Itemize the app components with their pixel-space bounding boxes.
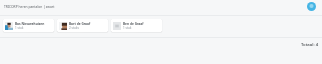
staticText: Bart de Graaf: [69, 22, 91, 26]
staticText: Ben de Graaf: [123, 22, 144, 26]
button[interactable]: Ben de Graaf: [111, 19, 162, 32]
button[interactable]: Bart de Graaf: [57, 19, 108, 32]
staticText: 1 stuk: [15, 26, 24, 30]
button[interactable]: Bas Nieuwehuizen: [3, 19, 54, 32]
staticText: Bas Nieuwehuizen: [15, 22, 45, 26]
staticText: 1 stuk: [123, 26, 132, 30]
button[interactable]: Add: [307, 2, 316, 11]
staticText: 2 stuks: [69, 26, 79, 30]
staticText: TRICORP heren pantalon | zwart: [4, 4, 55, 8]
staticText: Totaal: 4: [301, 42, 319, 48]
